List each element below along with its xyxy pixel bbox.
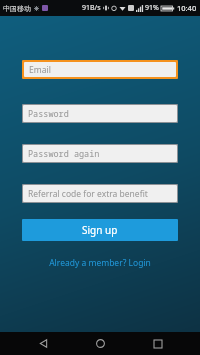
staticText: Password: [28, 108, 69, 120]
button[interactable]: Email: [24, 62, 176, 77]
button[interactable]: Back: [28, 332, 58, 355]
staticText: 91B/s: [82, 3, 101, 13]
staticText: 10:40: [177, 3, 197, 13]
staticText: 91%: [145, 3, 159, 13]
button[interactable]: Already a member? Login: [22, 255, 178, 271]
staticText: Email: [29, 64, 51, 76]
button[interactable]: Recent apps: [143, 332, 173, 355]
button[interactable]: Referral code for extra benefit: [23, 185, 177, 202]
staticText: Sign up: [82, 223, 118, 237]
button[interactable]: Home: [85, 332, 115, 355]
staticText: 中国移动: [3, 4, 31, 13]
staticText: Referral code for extra benefit: [28, 188, 148, 200]
staticText: Already a member? Login: [49, 257, 151, 269]
button[interactable]: Password: [23, 105, 177, 122]
staticText: Password again: [28, 148, 100, 160]
button[interactable]: Password again: [23, 145, 177, 162]
button[interactable]: Sign up: [22, 219, 178, 241]
